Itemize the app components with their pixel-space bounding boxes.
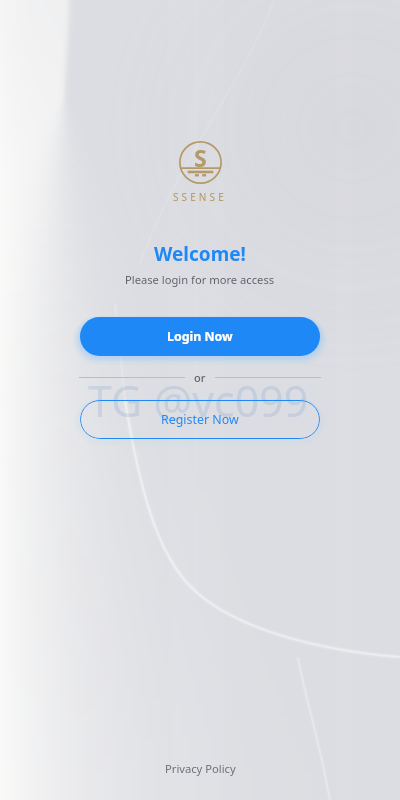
- staticText: Privacy Policy: [165, 761, 236, 776]
- staticText: Please login for more access: [125, 272, 275, 287]
- button[interactable]: Login Now: [80, 317, 320, 356]
- button[interactable]: Register Now: [80, 400, 320, 439]
- staticText: TG @vc099: [88, 371, 309, 430]
- staticText: SSENSE: [173, 190, 227, 204]
- button[interactable]: Privacy Policy: [165, 761, 236, 776]
- staticText: or: [194, 370, 206, 385]
- staticText: S: [194, 142, 207, 173]
- staticText: Login Now: [167, 328, 233, 345]
- staticText: Register Now: [161, 411, 239, 428]
- staticText: Welcome!: [154, 241, 246, 267]
